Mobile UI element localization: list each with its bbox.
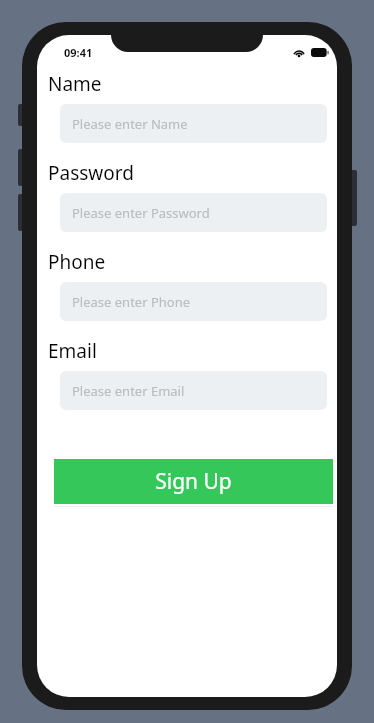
staticText: Please enter Password [72,204,210,222]
staticText: Password [48,160,134,186]
staticText: Sign Up [155,467,232,496]
staticText: Please enter Email [72,382,185,400]
button[interactable]: Please enter Phone [60,282,327,321]
staticText: Name [48,71,102,97]
other: Wi-Fi signal [293,48,305,57]
staticText: Please enter Name [72,115,188,133]
button[interactable]: Sign Up [54,459,333,504]
staticText: Phone [48,249,106,275]
button[interactable]: Please enter Name [60,104,327,143]
staticText: Email [48,338,97,364]
staticText: 09:41 [64,45,93,60]
staticText: Please enter Phone [72,293,191,311]
button[interactable]: Please enter Email [60,371,327,410]
other: Battery full [311,48,329,57]
button[interactable]: Please enter Password [60,193,327,232]
